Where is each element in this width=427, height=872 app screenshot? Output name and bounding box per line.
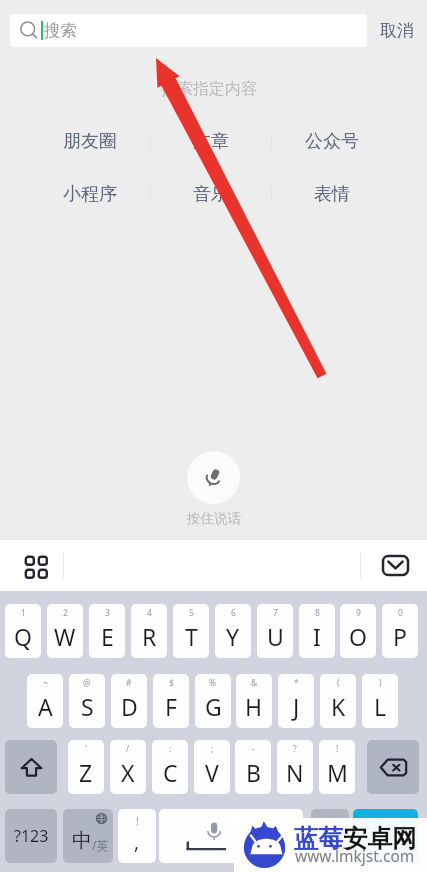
- staticText: F: [165, 691, 177, 722]
- staticText: 2: [63, 607, 68, 619]
- staticText: 4: [147, 607, 152, 619]
- button[interactable]: ~: [27, 674, 63, 728]
- staticText: Y: [226, 621, 240, 652]
- button[interactable]: #: [111, 674, 147, 728]
- staticText: ,: [134, 829, 140, 855]
- button[interactable]: !: [118, 809, 156, 863]
- staticText: 搜索指定内容: [161, 79, 257, 99]
- button[interactable]: @: [69, 674, 105, 728]
- staticText: 小程序: [63, 183, 117, 206]
- button[interactable]: 音乐: [151, 182, 271, 206]
- staticText: #: [126, 677, 132, 689]
- button[interactable]: Input methods: [19, 550, 51, 582]
- staticText: K: [331, 691, 346, 722]
- staticText: 3: [105, 607, 110, 619]
- staticText: L: [374, 691, 387, 722]
- button[interactable]: Period: [311, 809, 349, 863]
- staticText: ': [85, 743, 87, 755]
- button[interactable]: Shift: [5, 740, 57, 794]
- staticText: G: [205, 691, 222, 722]
- staticText: B: [246, 757, 261, 788]
- staticText: $: [169, 677, 174, 689]
- staticText: 1: [21, 607, 26, 619]
- button[interactable]: Hide keyboard: [377, 547, 414, 584]
- staticText: www.lmkjst.com: [295, 845, 415, 866]
- button[interactable]: ': [68, 740, 104, 794]
- button[interactable]: ?: [277, 740, 313, 794]
- staticText: V: [205, 757, 219, 788]
- staticText: 9: [356, 607, 361, 619]
- button[interactable]: 搜索: [10, 14, 367, 47]
- button[interactable]: Delete: [367, 740, 419, 794]
- button[interactable]: ): [362, 674, 398, 728]
- button[interactable]: !: [319, 740, 355, 794]
- staticText: (: [337, 677, 340, 689]
- button[interactable]: ;: [194, 740, 230, 794]
- staticText: ;: [211, 743, 214, 755]
- staticText: ?123: [14, 825, 49, 847]
- staticText: /英: [92, 837, 109, 853]
- staticText: 公众号: [305, 130, 359, 153]
- button[interactable]: %: [195, 674, 231, 728]
- button[interactable]: :: [152, 740, 188, 794]
- staticText: Q: [14, 621, 32, 652]
- button[interactable]: 朋友圈: [30, 129, 150, 153]
- staticText: T: [185, 621, 198, 652]
- button[interactable]: 公众号: [272, 129, 392, 153]
- button[interactable]: (: [320, 674, 356, 728]
- button[interactable]: *: [278, 674, 314, 728]
- button[interactable]: 取消: [367, 10, 423, 51]
- staticText: ?: [293, 743, 297, 755]
- button[interactable]: 3: [89, 604, 125, 658]
- staticText: P: [393, 621, 407, 652]
- staticText: J: [293, 691, 300, 722]
- staticText: H: [245, 691, 263, 722]
- button[interactable]: 2: [47, 604, 83, 658]
- staticText: /: [126, 743, 130, 755]
- staticText: X: [121, 757, 135, 788]
- staticText: ): [379, 677, 382, 689]
- staticText: 中: [72, 828, 92, 853]
- button[interactable]: Symbols: [5, 809, 57, 863]
- button[interactable]: 0: [382, 604, 418, 658]
- staticText: %: [209, 677, 217, 689]
- staticText: !: [136, 813, 139, 828]
- staticText: I: [313, 621, 321, 652]
- button[interactable]: 1: [5, 604, 41, 658]
- staticText: 0: [398, 607, 403, 619]
- button[interactable]: 8: [299, 604, 335, 658]
- button[interactable]: &: [236, 674, 272, 728]
- button[interactable]: 表情: [272, 182, 392, 206]
- staticText: :: [169, 743, 172, 755]
- button[interactable]: 文章: [151, 129, 271, 153]
- staticText: M: [327, 757, 348, 788]
- button[interactable]: -: [235, 740, 271, 794]
- staticText: C: [163, 757, 178, 788]
- button[interactable]: Space: [159, 809, 303, 863]
- button[interactable]: 小程序: [30, 182, 150, 206]
- staticText: A: [38, 691, 53, 722]
- staticText: &: [251, 677, 258, 689]
- staticText: E: [101, 621, 114, 652]
- button[interactable]: 5: [173, 604, 209, 658]
- staticText: 文章: [193, 130, 229, 153]
- staticText: D: [121, 691, 138, 722]
- staticText: 安卓网: [343, 823, 417, 854]
- staticText: S: [81, 691, 94, 722]
- button[interactable]: $: [153, 674, 189, 728]
- button[interactable]: 4: [131, 604, 167, 658]
- staticText: W: [54, 621, 76, 652]
- button[interactable]: Search: [353, 809, 418, 863]
- button[interactable]: Language: [63, 809, 113, 863]
- staticText: ~: [43, 677, 48, 689]
- button[interactable]: 7: [257, 604, 293, 658]
- button[interactable]: 6: [215, 604, 251, 658]
- staticText: @: [83, 677, 91, 689]
- button[interactable]: 9: [340, 604, 376, 658]
- button[interactable]: /: [110, 740, 146, 794]
- staticText: -: [252, 743, 255, 755]
- staticText: 音乐: [193, 183, 229, 206]
- staticText: 搜索: [44, 20, 77, 41]
- staticText: N: [286, 757, 304, 788]
- button[interactable]: Hold to talk: [187, 451, 240, 504]
